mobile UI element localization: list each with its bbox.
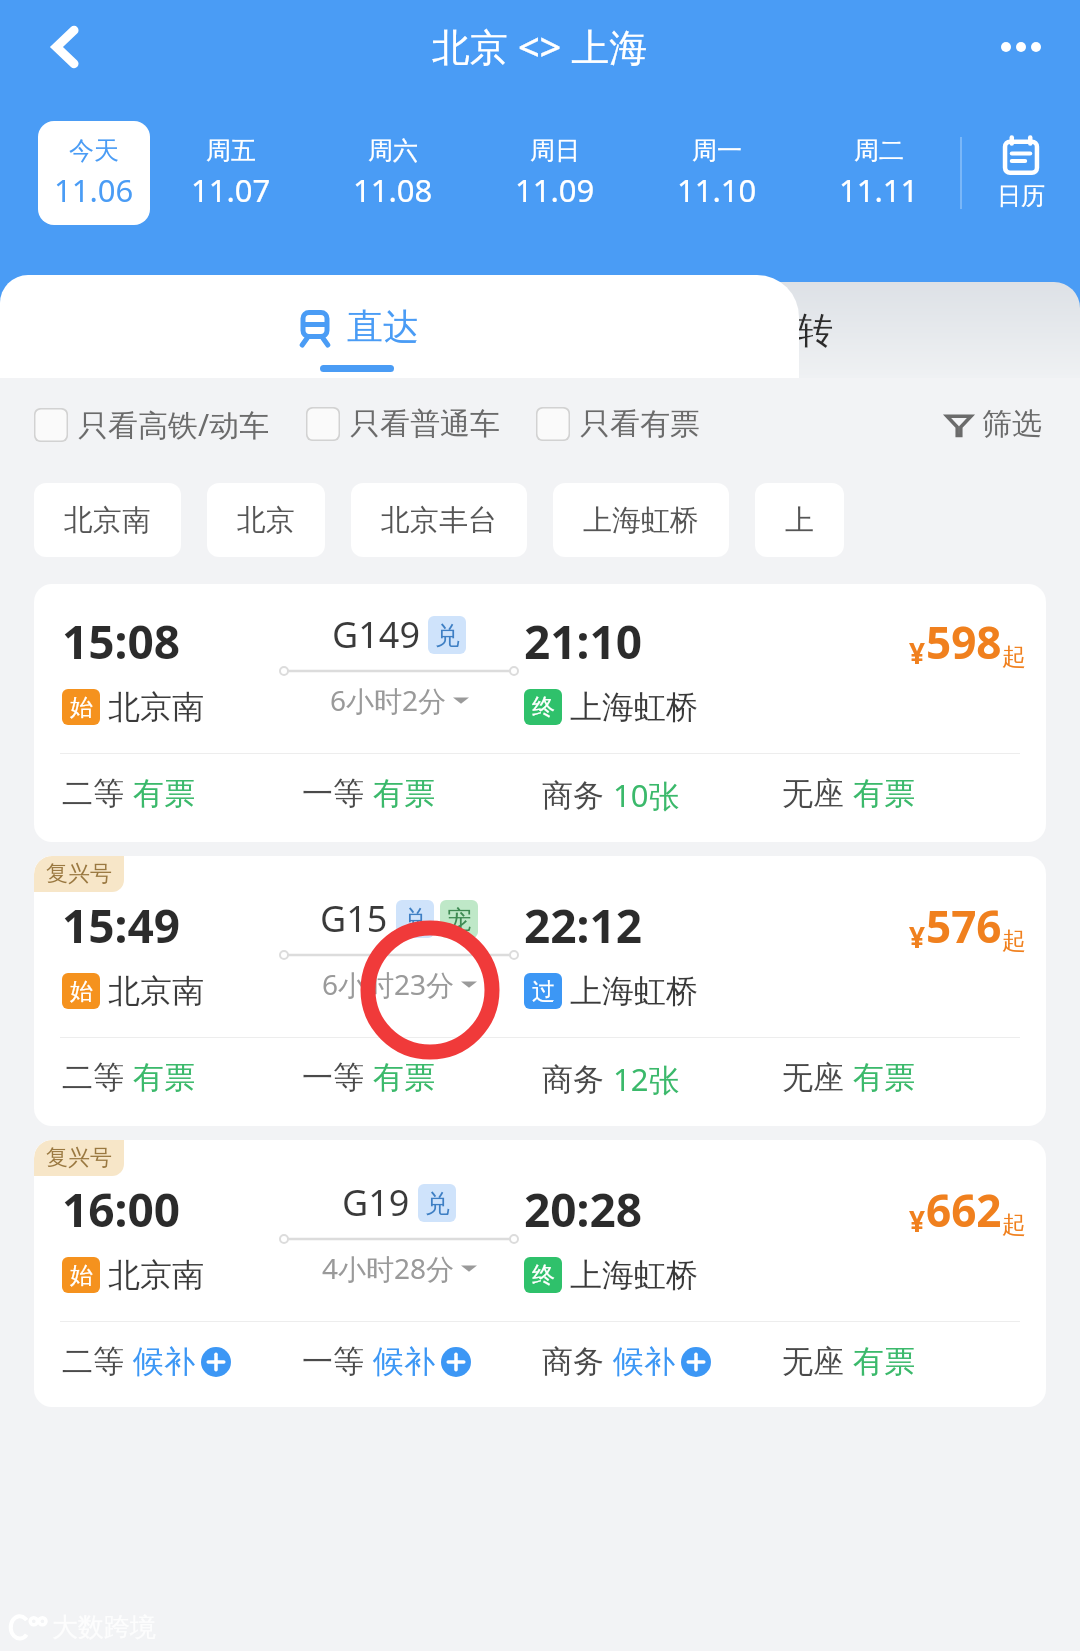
staticText: 终 bbox=[532, 1261, 555, 1290]
staticText: 662 bbox=[926, 1180, 1002, 1240]
staticText: 一等 bbox=[302, 774, 364, 813]
staticText: 候补 bbox=[373, 1342, 435, 1381]
staticText: 6小时2分 bbox=[330, 681, 447, 719]
staticText: ¥ bbox=[909, 1202, 926, 1240]
button[interactable]: 只看普通车 bbox=[306, 405, 500, 443]
button[interactable]: 日历 bbox=[962, 118, 1080, 228]
button[interactable]: 只看高铁/动车 bbox=[34, 404, 270, 445]
button[interactable]: 一等 bbox=[302, 1058, 542, 1097]
button[interactable]: 周二 bbox=[798, 118, 960, 228]
button[interactable]: 无座 bbox=[782, 774, 1022, 813]
button[interactable]: 中转 bbox=[410, 282, 1080, 378]
staticText: G149 bbox=[332, 610, 420, 659]
staticText: 周五 bbox=[206, 135, 256, 166]
staticText: 兑 bbox=[425, 1188, 450, 1219]
staticText: 上海虹桥 bbox=[570, 971, 698, 1011]
button[interactable]: 北京南 bbox=[34, 483, 181, 557]
staticText: 只看有票 bbox=[580, 405, 700, 443]
staticText: 周一 bbox=[692, 135, 742, 166]
button[interactable]: 无座 bbox=[782, 1058, 1022, 1097]
button[interactable]: 北京丰台 bbox=[351, 483, 527, 557]
button[interactable]: 无座 bbox=[782, 1342, 1022, 1381]
button[interactable]: 商务 bbox=[542, 774, 782, 816]
staticText: 无座 bbox=[782, 1342, 844, 1381]
button[interactable]: 只看有票 bbox=[536, 405, 700, 443]
staticText: 上 bbox=[785, 502, 814, 539]
staticText: 有票 bbox=[373, 1058, 435, 1097]
staticText: 有票 bbox=[853, 774, 915, 813]
button[interactable]: 北京 bbox=[207, 483, 325, 557]
staticText: 北京南 bbox=[108, 1255, 204, 1295]
staticText: 周二 bbox=[854, 135, 904, 166]
staticText: 有票 bbox=[853, 1058, 915, 1097]
staticText: 北京南 bbox=[108, 687, 204, 727]
staticText: 10张 bbox=[613, 774, 680, 816]
staticText: 16:00 bbox=[62, 1178, 181, 1241]
staticText: 二等 bbox=[62, 1342, 124, 1381]
button[interactable]: 二等 bbox=[62, 1342, 302, 1381]
staticText: 二等 bbox=[62, 1058, 124, 1097]
staticText: 北京南 bbox=[64, 502, 151, 539]
staticText: 6小时23分 bbox=[322, 965, 455, 1003]
button[interactable]: 二等 bbox=[62, 774, 302, 813]
button[interactable]: 二等 bbox=[62, 1058, 302, 1097]
staticText: 复兴号 bbox=[46, 860, 112, 888]
button[interactable]: 周一 bbox=[636, 118, 798, 228]
button[interactable]: 一等 bbox=[302, 774, 542, 813]
staticText: 只看高铁/动车 bbox=[78, 404, 270, 445]
staticText: 商务 bbox=[542, 1342, 604, 1381]
staticText: 直达 bbox=[347, 304, 419, 349]
staticText: ¥ bbox=[909, 918, 926, 956]
staticText: 终 bbox=[532, 693, 555, 722]
staticText: 576 bbox=[926, 896, 1002, 956]
button[interactable]: Back bbox=[28, 8, 106, 86]
staticText: 兑 bbox=[435, 620, 460, 651]
button[interactable]: 商务 bbox=[542, 1058, 782, 1100]
staticText: 一等 bbox=[302, 1058, 364, 1097]
staticText: 22:12 bbox=[524, 894, 643, 957]
button[interactable]: 一等 bbox=[302, 1342, 542, 1381]
button[interactable]: 复兴号 bbox=[34, 856, 1046, 1126]
staticText: 日历 bbox=[997, 181, 1045, 211]
staticText: 起 bbox=[1002, 642, 1026, 672]
staticText: 一等 bbox=[302, 1342, 364, 1381]
staticText: 21:10 bbox=[524, 610, 643, 673]
staticText: 大数跨境 bbox=[52, 1611, 156, 1644]
staticText: 12张 bbox=[613, 1058, 680, 1100]
button[interactable]: 直达 bbox=[0, 275, 799, 378]
button[interactable]: 今天 bbox=[38, 121, 150, 225]
staticText: 只看普通车 bbox=[350, 405, 500, 443]
staticText: 598 bbox=[926, 612, 1002, 672]
staticText: 15:08 bbox=[62, 610, 181, 673]
button[interactable]: 商务 bbox=[542, 1342, 782, 1381]
button[interactable]: 上 bbox=[755, 483, 844, 557]
staticText: 上海虹桥 bbox=[583, 502, 699, 539]
staticText: 无座 bbox=[782, 1058, 844, 1097]
staticText: 有票 bbox=[853, 1342, 915, 1381]
button[interactable]: 周五 bbox=[150, 118, 312, 228]
staticText: 始 bbox=[70, 1261, 93, 1290]
staticText: 候补 bbox=[133, 1342, 195, 1381]
staticText: 11.06 bbox=[54, 169, 134, 211]
staticText: 起 bbox=[1002, 1210, 1026, 1240]
button[interactable]: 周日 bbox=[474, 118, 636, 228]
staticText: 15:49 bbox=[62, 894, 181, 957]
button[interactable]: 上海虹桥 bbox=[553, 483, 729, 557]
button[interactable]: 筛选 bbox=[940, 401, 1046, 447]
staticText: 11.10 bbox=[677, 169, 757, 211]
button[interactable]: 15:08 bbox=[34, 584, 1046, 842]
staticText: 20:28 bbox=[524, 1178, 643, 1241]
staticText: 11.08 bbox=[353, 169, 433, 211]
staticText: 宠 bbox=[447, 904, 472, 935]
staticText: 有票 bbox=[133, 774, 195, 813]
staticText: 4小时28分 bbox=[322, 1249, 455, 1287]
staticText: 北京 <> 上海 bbox=[432, 20, 648, 72]
staticText: 今天 bbox=[69, 135, 119, 166]
staticText: 候补 bbox=[613, 1342, 675, 1381]
button[interactable]: 周六 bbox=[312, 118, 474, 228]
staticText: 北京南 bbox=[108, 971, 204, 1011]
staticText: 周日 bbox=[530, 135, 580, 166]
button[interactable]: More options bbox=[986, 12, 1056, 82]
staticText: 有票 bbox=[133, 1058, 195, 1097]
button[interactable]: 复兴号 bbox=[34, 1140, 1046, 1407]
